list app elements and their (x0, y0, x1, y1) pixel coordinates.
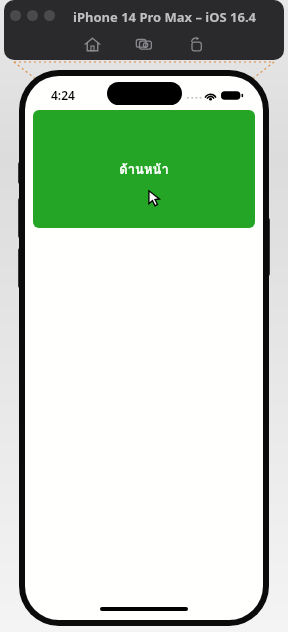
button[interactable]: Screenshot (130, 30, 158, 58)
button[interactable]: Rotate (182, 30, 210, 58)
staticText: 4:24 (51, 87, 75, 103)
button[interactable]: Window button (44, 10, 55, 21)
button[interactable]: Window button (27, 10, 38, 21)
button[interactable]: ด้านหน้า (33, 110, 255, 228)
button[interactable]: Window button (10, 10, 21, 21)
staticText: iPhone 14 Pro Max – iOS 16.4 (73, 8, 257, 26)
staticText: ด้านหน้า (119, 159, 169, 180)
button[interactable]: Home (78, 30, 106, 58)
